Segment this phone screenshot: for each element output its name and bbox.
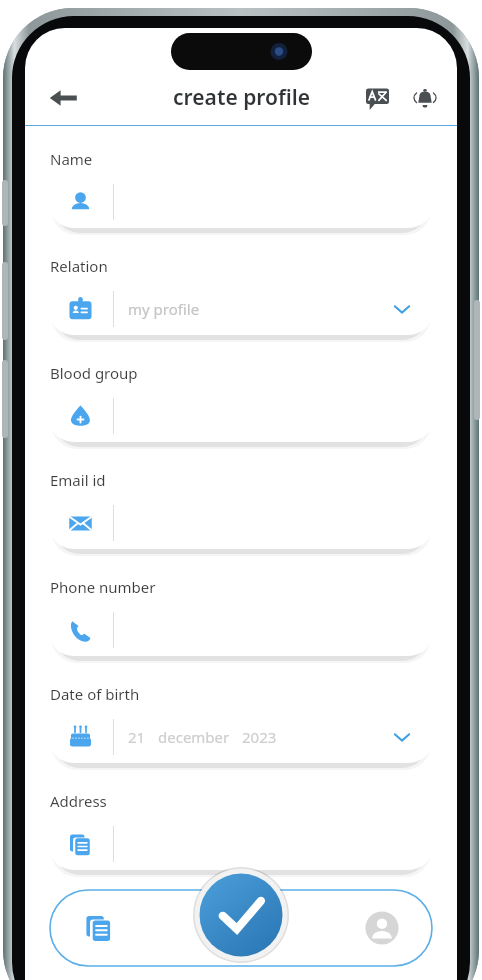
button[interactable]: Documents (76, 905, 122, 951)
button[interactable]: 21 (48, 711, 434, 763)
staticText: 2023 (242, 727, 277, 747)
staticText: Address (50, 791, 107, 811)
button[interactable] (48, 497, 434, 549)
staticText: Relation (50, 256, 108, 276)
button[interactable] (48, 176, 434, 228)
staticText: Email id (50, 470, 106, 490)
staticText: Name (50, 149, 93, 169)
staticText: create profile (173, 83, 310, 112)
staticText: 21 (128, 727, 146, 747)
button[interactable] (48, 604, 434, 656)
button[interactable]: Back (39, 74, 87, 122)
staticText: Date of birth (50, 684, 140, 704)
staticText: december (158, 727, 230, 747)
button[interactable]: Notifications (405, 78, 445, 118)
button[interactable]: Profile (360, 906, 404, 950)
button[interactable] (48, 818, 434, 870)
button[interactable] (48, 390, 434, 442)
button[interactable]: Save profile (191, 865, 291, 965)
button[interactable]: my profile (48, 283, 434, 335)
staticText: Blood group (50, 363, 138, 383)
button[interactable]: Translate (357, 78, 397, 118)
staticText: Phone number (50, 577, 156, 597)
staticText: my profile (128, 299, 200, 319)
